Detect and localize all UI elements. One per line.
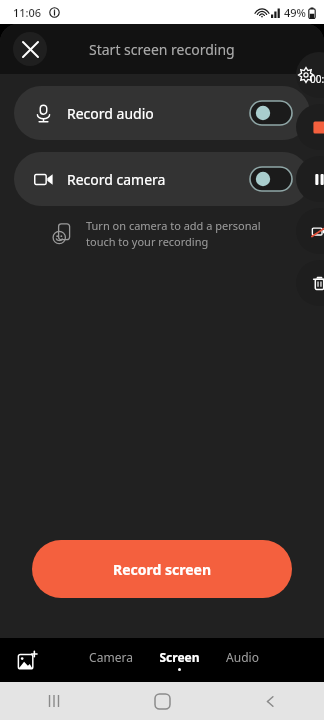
- staticText: Start screen recording: [89, 40, 235, 59]
- staticText: Record camera: [67, 170, 166, 189]
- button[interactable]: Turn camera off: [296, 208, 324, 254]
- staticText: Record audio: [67, 104, 154, 123]
- button[interactable]: Record camera: [14, 152, 310, 206]
- staticText: 00:00: [310, 72, 324, 86]
- button[interactable]: Camera: [87, 647, 135, 673]
- button[interactable]: Recording settings: [296, 52, 324, 98]
- button[interactable]: Screen: [157, 647, 202, 673]
- button[interactable]: Stop recording: [296, 104, 324, 150]
- staticText: Record screen: [113, 560, 212, 579]
- staticText: 49%: [284, 5, 306, 20]
- staticText: Turn on camera to add a personal touch t…: [86, 218, 284, 249]
- button[interactable]: Delete recording: [296, 260, 324, 306]
- button[interactable]: Record audio: [14, 86, 310, 140]
- button[interactable]: Recent apps: [0, 682, 108, 720]
- button[interactable]: Record screen: [32, 540, 292, 598]
- button[interactable]: Pause recording: [296, 156, 324, 202]
- button[interactable]: Back: [216, 682, 324, 720]
- button[interactable]: Add image: [12, 645, 42, 675]
- button[interactable]: Close: [13, 32, 47, 66]
- button[interactable]: Home: [108, 682, 216, 720]
- staticText: Audio: [226, 649, 259, 665]
- staticText: Screen: [159, 649, 200, 665]
- staticText: Camera: [89, 649, 133, 665]
- staticText: 11:06: [13, 5, 42, 20]
- button[interactable]: Audio: [224, 647, 261, 673]
